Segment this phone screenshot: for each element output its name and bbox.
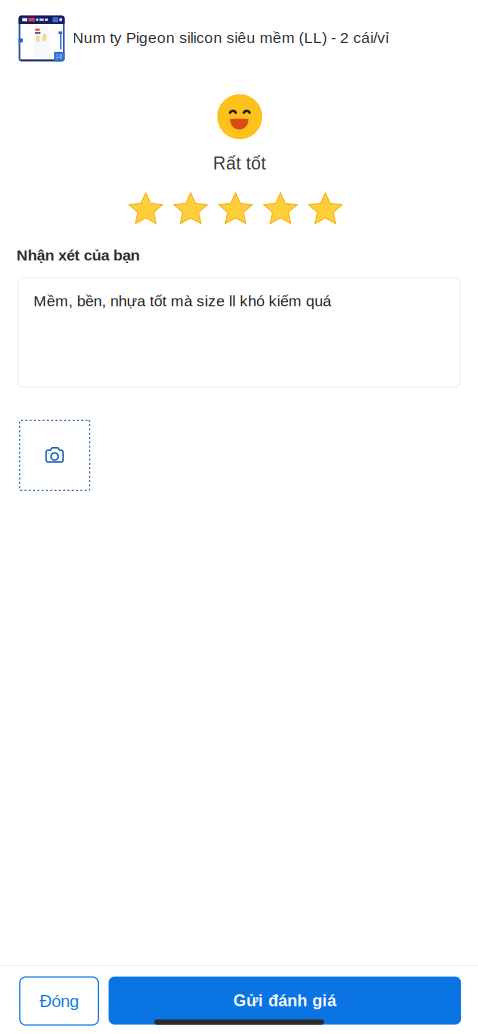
staticText: Nhận xét của bạn: [17, 247, 139, 264]
button[interactable]: Thêm ảnh: [20, 420, 90, 490]
button[interactable]: Đóng: [20, 977, 98, 1025]
staticText: Mềm, bền, nhựa tốt mà size ll khó kiếm q…: [34, 292, 331, 309]
staticText: 1/2: [56, 54, 63, 59]
staticText: Num ty Pigeon silicon siêu mềm (LL) - 2 …: [73, 29, 388, 46]
staticText: Gửi đánh giá: [233, 991, 336, 1010]
staticText: Rất tốt: [213, 154, 266, 173]
staticText: Đóng: [40, 991, 79, 1011]
button[interactable]: Gửi đánh giá: [109, 977, 461, 1025]
